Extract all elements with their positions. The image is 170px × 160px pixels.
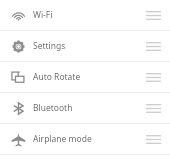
staticText: Wi-Fi bbox=[33, 9, 142, 21]
button[interactable]: Wi-Fi bbox=[0, 0, 170, 31]
button[interactable]: Bluetooth bbox=[0, 93, 170, 124]
staticText: Airplane mode bbox=[33, 133, 142, 145]
button[interactable]: Reorder Airplane mode bbox=[142, 124, 164, 154]
button[interactable]: Airplane mode bbox=[0, 124, 170, 155]
button[interactable]: Reorder Auto Rotate bbox=[142, 62, 164, 92]
button[interactable]: Auto Rotate bbox=[0, 62, 170, 93]
button[interactable]: Reorder Wi-Fi bbox=[142, 0, 164, 30]
staticText: Auto Rotate bbox=[33, 71, 142, 83]
staticText: Settings bbox=[33, 40, 142, 52]
button[interactable]: Reorder Bluetooth bbox=[142, 93, 164, 123]
staticText: Bluetooth bbox=[33, 102, 142, 114]
button[interactable]: Reorder Settings bbox=[142, 31, 164, 61]
button[interactable]: Settings bbox=[0, 31, 170, 62]
